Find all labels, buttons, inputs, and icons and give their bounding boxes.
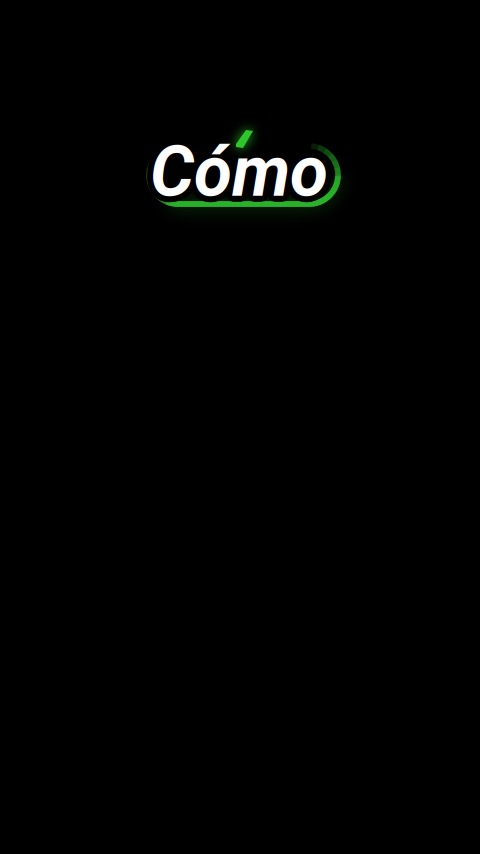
staticText: Cómo — [144, 134, 322, 215]
staticText: Cómo — [152, 126, 330, 207]
staticText: Cómo — [146, 136, 324, 217]
staticText: Cómo — [148, 126, 326, 207]
staticText: Cómo — [154, 127, 332, 208]
staticText: Cómo — [156, 131, 334, 213]
staticText: Cómo — [146, 127, 324, 208]
staticText: Cómo — [144, 129, 322, 210]
staticText: Cómo — [154, 136, 332, 217]
staticText: Cómo — [152, 137, 330, 218]
staticText: Cómo — [148, 137, 326, 218]
staticText: Cómo — [150, 131, 328, 213]
staticText: Cómo — [155, 129, 333, 210]
staticText: Cómo — [150, 137, 328, 219]
staticText: Cómo — [155, 134, 333, 215]
staticText: Cómo — [150, 125, 328, 207]
staticText: Cómo — [144, 131, 322, 213]
